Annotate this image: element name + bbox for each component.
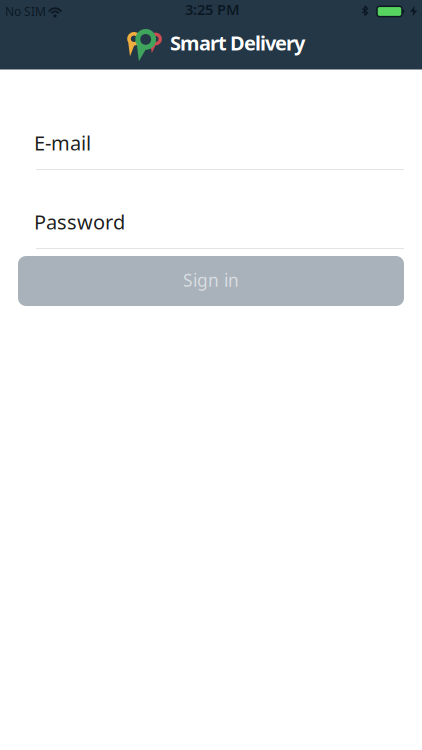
button[interactable]: Password <box>36 208 404 249</box>
button[interactable]: E-mail <box>36 129 404 170</box>
staticText: 3:25 PM <box>185 0 240 19</box>
staticText: Smart Delivery <box>170 29 305 56</box>
button[interactable]: Sign in <box>18 256 404 306</box>
staticText: No SIM <box>5 3 46 19</box>
staticText: Sign in <box>183 268 239 291</box>
staticText: E-mail <box>34 129 91 156</box>
staticText: Password <box>34 208 125 235</box>
